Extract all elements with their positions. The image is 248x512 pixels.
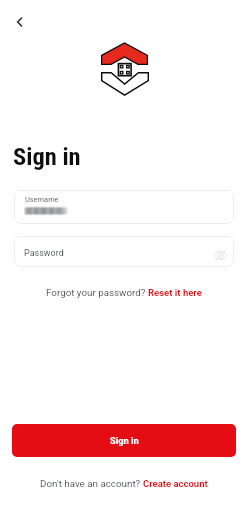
button[interactable]: Sign in bbox=[12, 424, 236, 457]
button[interactable]: Create account bbox=[143, 478, 208, 489]
staticText: Sign in bbox=[110, 435, 139, 446]
staticText: Forgot your password? bbox=[46, 287, 148, 298]
button[interactable]: Username bbox=[14, 190, 234, 224]
staticText: Sign in bbox=[13, 142, 81, 171]
button[interactable]: Password bbox=[14, 236, 234, 267]
staticText: Password bbox=[24, 248, 64, 259]
button[interactable]: Back bbox=[5, 8, 33, 36]
staticText: Username bbox=[25, 195, 59, 204]
button[interactable]: Reset it here bbox=[148, 287, 202, 298]
staticText: Create account bbox=[143, 478, 208, 489]
staticText: Reset it here bbox=[148, 287, 202, 298]
button[interactable]: Show password bbox=[211, 246, 229, 264]
staticText: Don't have an account? bbox=[40, 478, 143, 489]
